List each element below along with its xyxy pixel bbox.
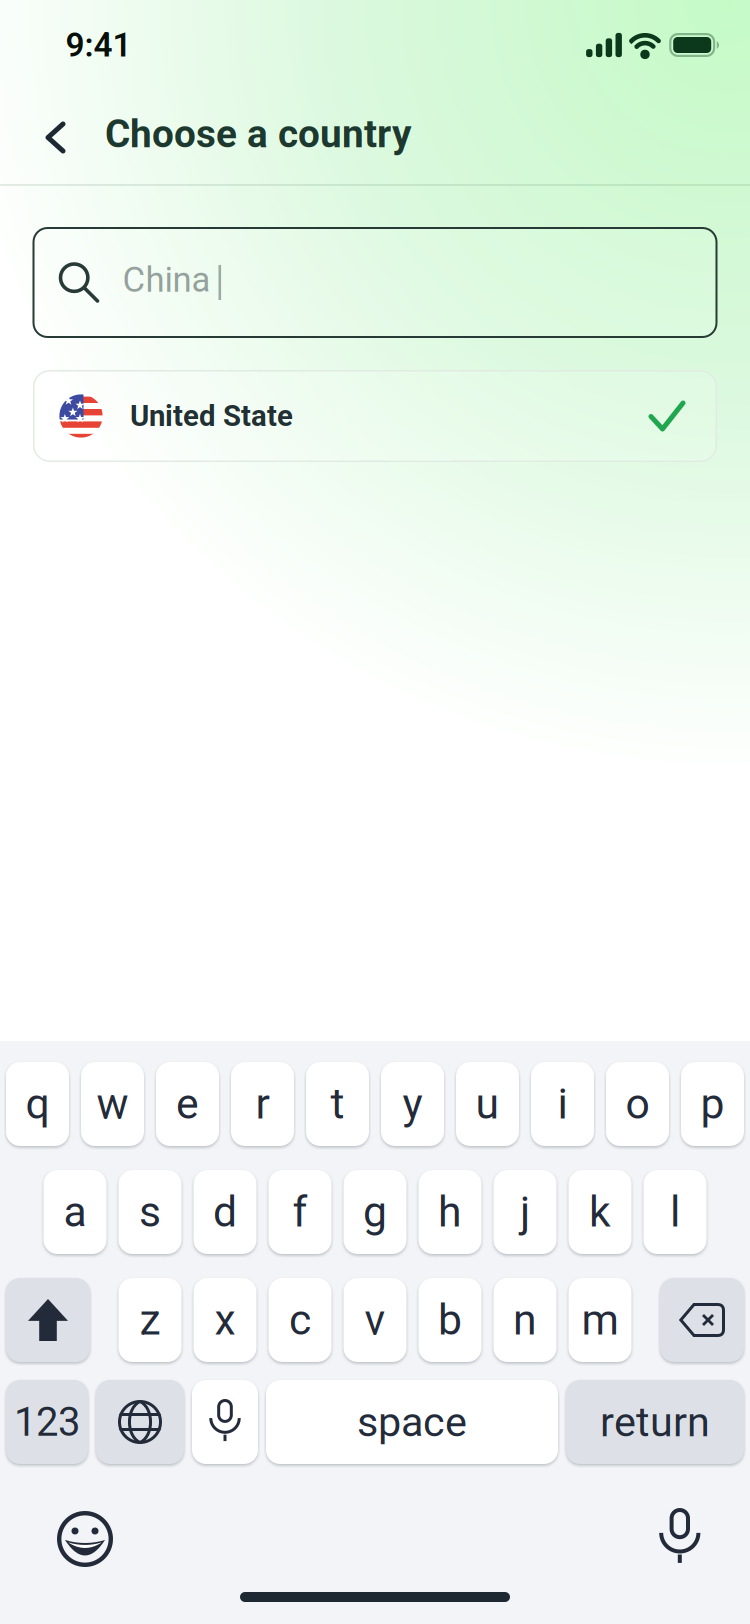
- staticText: l: [670, 1188, 680, 1236]
- staticText: y: [402, 1080, 422, 1128]
- staticText: q: [25, 1080, 49, 1128]
- button[interactable]: k: [568, 1170, 631, 1254]
- button[interactable]: f: [268, 1170, 331, 1254]
- button[interactable]: Next keyboard: [96, 1380, 184, 1464]
- button[interactable]: Dictate: [192, 1380, 258, 1464]
- staticText: 9:41: [65, 26, 131, 64]
- staticText: o: [625, 1080, 649, 1128]
- button[interactable]: q: [6, 1062, 69, 1146]
- button[interactable]: e: [156, 1062, 219, 1146]
- button[interactable]: j: [493, 1170, 556, 1254]
- staticText: k: [589, 1188, 611, 1236]
- button[interactable]: i: [531, 1062, 594, 1146]
- staticText: 123: [14, 1399, 80, 1445]
- button[interactable]: n: [493, 1278, 556, 1362]
- staticText: c: [289, 1296, 311, 1344]
- staticText: space: [357, 1398, 467, 1446]
- button[interactable]: d: [193, 1170, 256, 1254]
- button[interactable]: l: [643, 1170, 706, 1254]
- button[interactable]: v: [343, 1278, 406, 1362]
- staticText: v: [364, 1296, 385, 1344]
- button[interactable]: 123: [6, 1380, 88, 1464]
- button[interactable]: m: [568, 1278, 631, 1362]
- button[interactable]: c: [268, 1278, 331, 1362]
- staticText: j: [520, 1188, 530, 1236]
- button[interactable]: t: [306, 1062, 369, 1146]
- staticText: s: [139, 1188, 161, 1236]
- staticText: return: [600, 1398, 710, 1446]
- staticText: i: [557, 1080, 567, 1128]
- button[interactable]: Dictation: [660, 1508, 700, 1568]
- staticText: z: [139, 1296, 160, 1344]
- button[interactable]: u: [456, 1062, 519, 1146]
- staticText: United State: [130, 399, 293, 433]
- staticText: w: [96, 1080, 128, 1128]
- staticText: d: [213, 1188, 237, 1236]
- button[interactable]: space: [266, 1380, 558, 1464]
- button[interactable]: r: [231, 1062, 294, 1146]
- staticText: m: [581, 1296, 618, 1344]
- button[interactable]: z: [118, 1278, 181, 1362]
- staticText: t: [330, 1080, 344, 1128]
- staticText: China: [122, 260, 210, 300]
- button[interactable]: Delete: [660, 1278, 744, 1362]
- button[interactable]: United State, selected: [33, 370, 717, 462]
- button[interactable]: a: [43, 1170, 106, 1254]
- button[interactable]: Shift: [6, 1278, 90, 1362]
- button[interactable]: o: [606, 1062, 669, 1146]
- button[interactable]: return: [566, 1380, 744, 1464]
- button[interactable]: g: [343, 1170, 406, 1254]
- button[interactable]: p: [681, 1062, 744, 1146]
- button[interactable]: b: [418, 1278, 481, 1362]
- button[interactable]: s: [118, 1170, 181, 1254]
- staticText: b: [438, 1296, 462, 1344]
- staticText: h: [438, 1188, 462, 1236]
- button[interactable]: y: [381, 1062, 444, 1146]
- staticText: u: [475, 1080, 499, 1128]
- staticText: p: [700, 1080, 724, 1128]
- button[interactable]: Search: [32, 227, 717, 338]
- staticText: Choose a country: [105, 112, 411, 156]
- button[interactable]: h: [418, 1170, 481, 1254]
- staticText: a: [63, 1188, 86, 1236]
- staticText: x: [214, 1296, 235, 1344]
- staticText: e: [176, 1080, 199, 1128]
- staticText: g: [363, 1188, 387, 1236]
- button[interactable]: x: [193, 1278, 256, 1362]
- staticText: n: [513, 1296, 537, 1344]
- staticText: r: [255, 1080, 269, 1128]
- staticText: f: [292, 1188, 307, 1236]
- button[interactable]: w: [81, 1062, 144, 1146]
- button[interactable]: Emoji: [57, 1511, 113, 1567]
- button[interactable]: Back: [34, 110, 77, 165]
